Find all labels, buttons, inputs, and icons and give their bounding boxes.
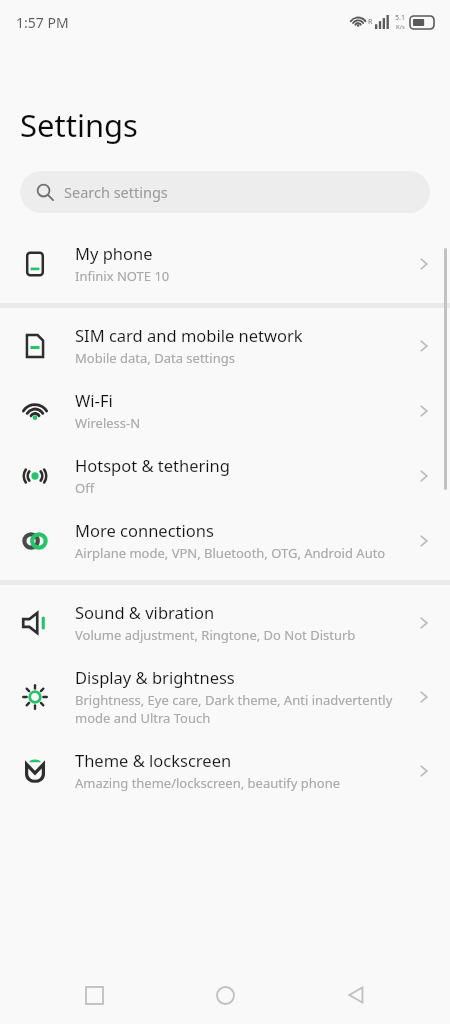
staticText: Display & brightness bbox=[75, 666, 235, 688]
staticText: SIM card and mobile network bbox=[75, 324, 303, 346]
staticText: Infinix NOTE 10 bbox=[75, 267, 170, 285]
staticText: Hotspot & tethering bbox=[75, 454, 230, 476]
staticText: More connections bbox=[75, 519, 214, 541]
staticText: 5.1 bbox=[395, 13, 405, 23]
button[interactable]: Hotspot & tethering bbox=[0, 443, 450, 508]
staticText: 1:57 PM bbox=[16, 13, 69, 32]
staticText: Off bbox=[75, 479, 95, 497]
staticText: Wi-Fi bbox=[75, 389, 113, 411]
button[interactable]: My phone bbox=[0, 231, 450, 296]
staticText: Wireless-N bbox=[75, 414, 141, 432]
staticText: Volume adjustment, Ringtone, Do Not Dist… bbox=[75, 626, 356, 644]
staticText: Search settings bbox=[64, 182, 168, 202]
staticText: Sound & vibration bbox=[75, 601, 215, 623]
button[interactable]: Back bbox=[332, 971, 380, 1019]
button[interactable]: SIM card and mobile network bbox=[0, 313, 450, 378]
button[interactable]: Display & brightness bbox=[0, 655, 450, 738]
button[interactable]: More connections bbox=[0, 508, 450, 573]
staticText: Settings bbox=[20, 104, 138, 146]
button[interactable]: Recent apps bbox=[70, 971, 118, 1019]
staticText: My phone bbox=[75, 242, 153, 264]
staticText: Airplane mode, VPN, Bluetooth, OTG, Andr… bbox=[75, 544, 386, 562]
staticText: Theme & lockscreen bbox=[75, 749, 232, 771]
button[interactable]: Wi-Fi bbox=[0, 378, 450, 443]
staticText: Brightness, Eye care, Dark theme, Anti i… bbox=[75, 691, 408, 727]
button[interactable]: Sound & vibration bbox=[0, 590, 450, 655]
staticText: Amazing theme/lockscreen, beautify phone bbox=[75, 774, 340, 792]
staticText: R bbox=[368, 17, 373, 27]
button[interactable]: Home bbox=[201, 971, 249, 1019]
button[interactable]: Search settings bbox=[20, 171, 430, 213]
staticText: K/s bbox=[396, 23, 405, 31]
button[interactable]: Theme & lockscreen bbox=[0, 738, 450, 803]
staticText: Mobile data, Data settings bbox=[75, 349, 235, 367]
